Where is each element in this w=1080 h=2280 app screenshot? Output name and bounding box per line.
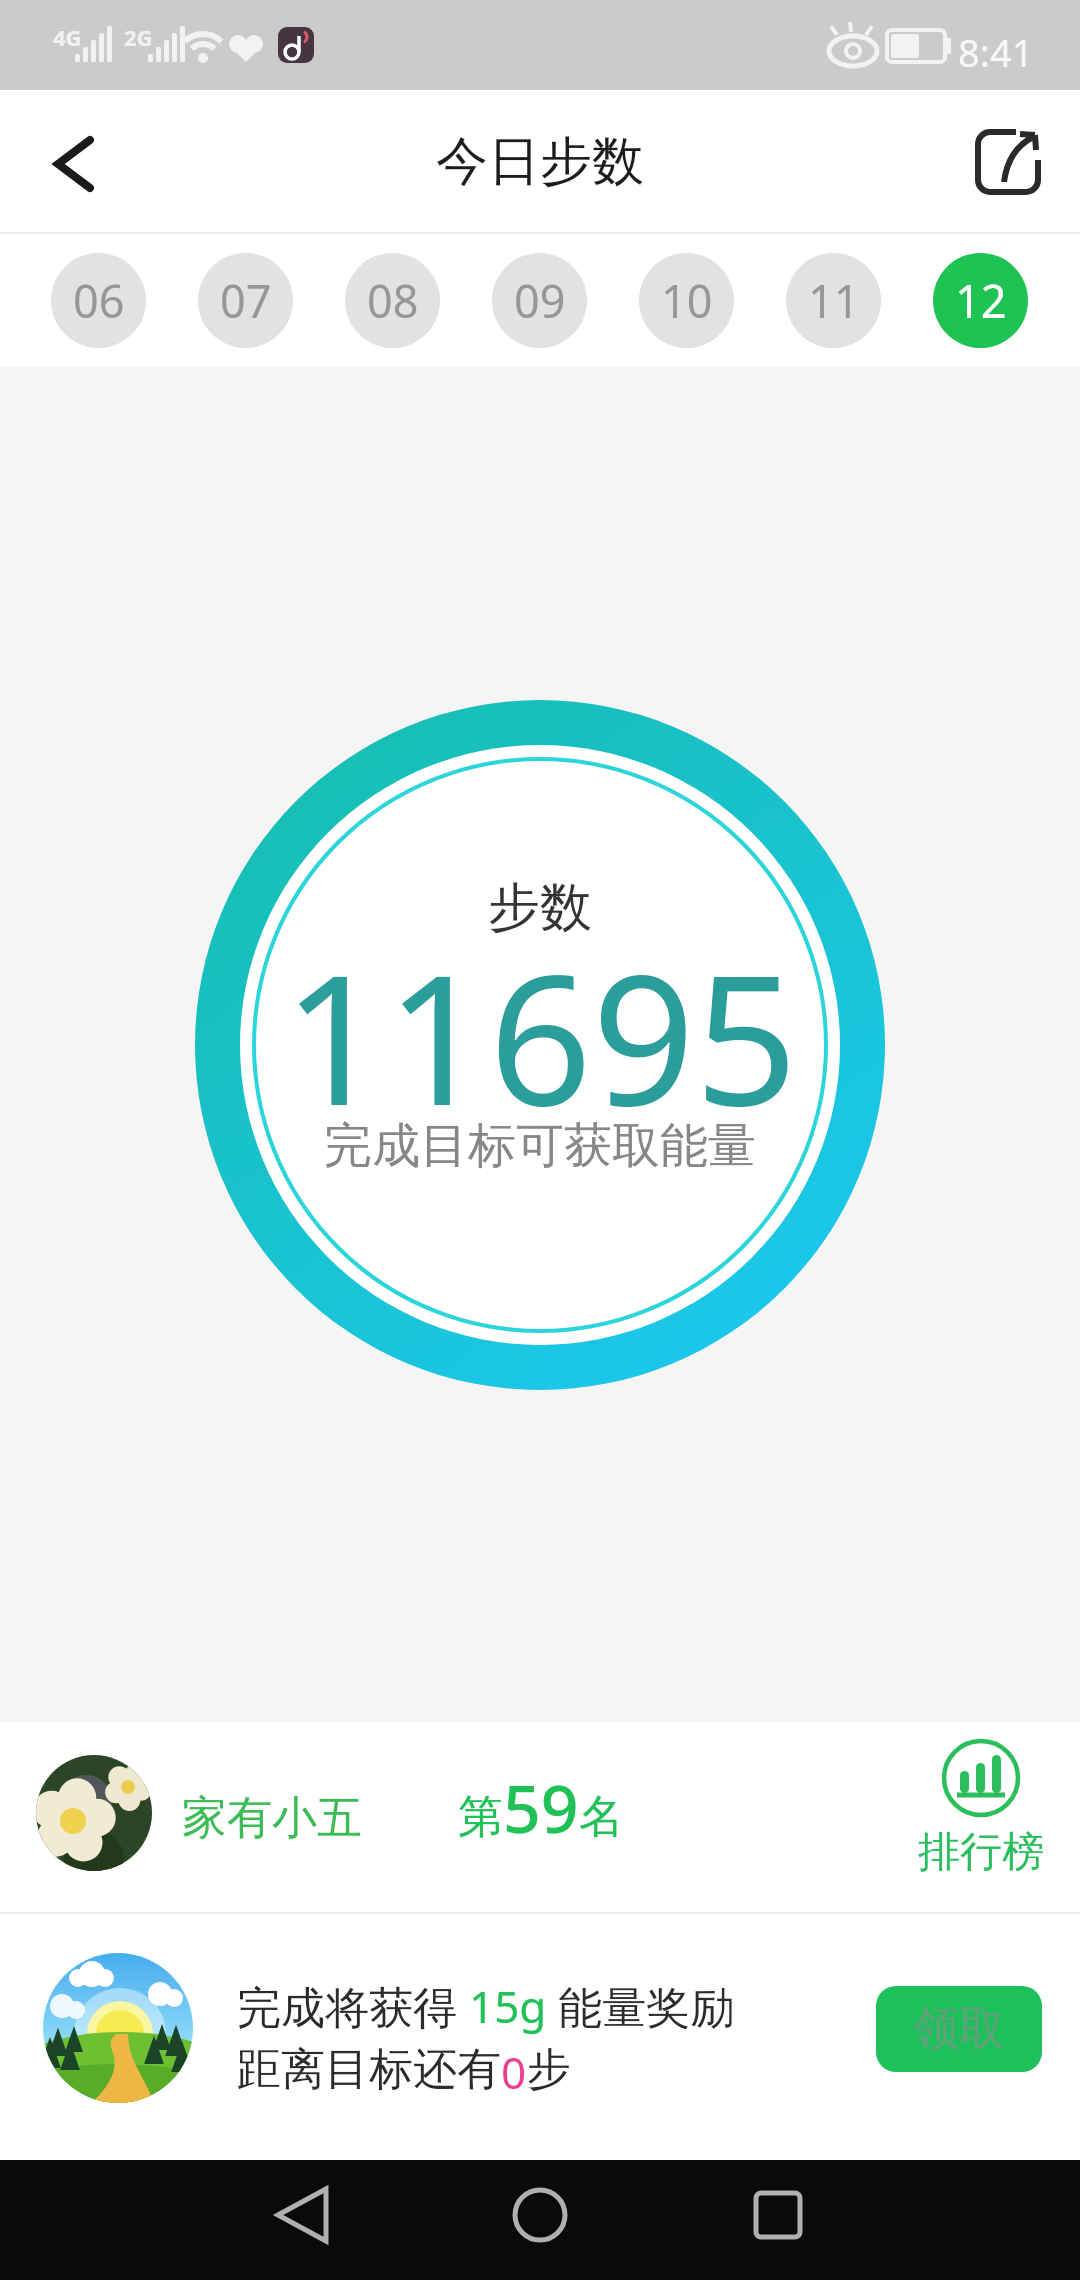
button[interactable]: [250, 2172, 354, 2268]
button[interactable]: 07: [198, 253, 293, 348]
staticText: 08: [367, 270, 419, 331]
staticText: 步: [527, 2042, 571, 2097]
button[interactable]: 排行榜: [915, 1738, 1047, 1879]
staticText: 10: [661, 270, 713, 331]
staticText: 完成目标可获取能量: [324, 1116, 756, 1176]
staticText: 09: [514, 270, 566, 331]
button[interactable]: 06: [51, 253, 146, 348]
staticText: 12: [955, 270, 1007, 331]
staticText: 06: [73, 270, 125, 331]
staticText: 今日步数: [436, 129, 644, 195]
button[interactable]: [30, 120, 114, 204]
staticText: 59: [503, 1762, 579, 1852]
button[interactable]: 10: [639, 253, 734, 348]
staticText: 步数: [488, 875, 592, 941]
staticText: 15g: [469, 1976, 547, 2036]
staticText: 距离目标还有: [237, 2042, 501, 2097]
staticText: 8:41: [958, 26, 1034, 78]
button[interactable]: [962, 116, 1054, 208]
staticText: 第: [458, 1789, 503, 1846]
staticText: 排行榜: [918, 1826, 1044, 1879]
button[interactable]: 08: [345, 253, 440, 348]
button[interactable]: [488, 2172, 592, 2268]
staticText: 名: [579, 1789, 624, 1846]
staticText: 2G: [124, 22, 153, 52]
staticText: 11695: [283, 913, 798, 1113]
button[interactable]: 09: [492, 253, 587, 348]
button[interactable]: 12: [933, 253, 1028, 348]
button[interactable]: 领取: [876, 1986, 1042, 2072]
button[interactable]: [726, 2172, 830, 2268]
staticText: 07: [220, 270, 272, 331]
staticText: 4G: [53, 22, 82, 52]
staticText: 家有小五: [182, 1790, 362, 1847]
staticText: 11: [808, 270, 860, 331]
staticText: 完成将获得: [237, 1976, 469, 2036]
staticText: 0: [501, 2042, 527, 2102]
button[interactable]: 11: [786, 253, 881, 348]
staticText: 能量奖励: [547, 1976, 735, 2036]
staticText: 领取: [913, 2000, 1005, 2058]
